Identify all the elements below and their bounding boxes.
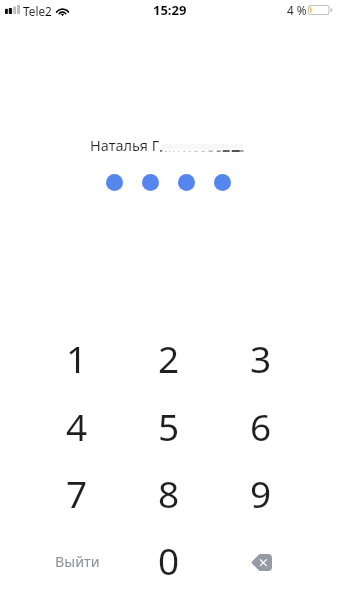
staticText: 8 — [158, 468, 180, 518]
button[interactable]: 1 — [37, 330, 117, 386]
button[interactable]: 7 — [37, 465, 117, 521]
button[interactable]: Выйти — [37, 533, 117, 589]
button[interactable]: 0 — [129, 532, 209, 588]
staticText: 6 — [250, 401, 272, 451]
button[interactable]: 2 — [129, 330, 209, 386]
staticText: 0 — [158, 535, 180, 585]
staticText: 3 — [250, 333, 272, 383]
button[interactable]: 5 — [129, 398, 209, 454]
staticText: 15:29 — [153, 1, 187, 19]
button[interactable]: 9 — [221, 465, 301, 521]
button[interactable]: 3 — [221, 330, 301, 386]
button[interactable]: 8 — [129, 465, 209, 521]
staticText: 9 — [250, 468, 272, 518]
staticText: Tele2 — [23, 3, 52, 19]
staticText: 7 — [66, 468, 88, 518]
staticText: 2 — [158, 333, 180, 383]
button[interactable]: Удалить — [233, 539, 289, 585]
button[interactable]: 4 — [37, 398, 117, 454]
button[interactable]: 6 — [221, 398, 301, 454]
staticText: 1 — [66, 333, 88, 383]
staticText: 5 — [158, 401, 180, 451]
staticText: 4 % — [287, 2, 307, 18]
staticText: Наталья Г — [90, 135, 160, 155]
staticText: 4 — [66, 401, 88, 451]
staticText: Выйти — [55, 552, 100, 571]
